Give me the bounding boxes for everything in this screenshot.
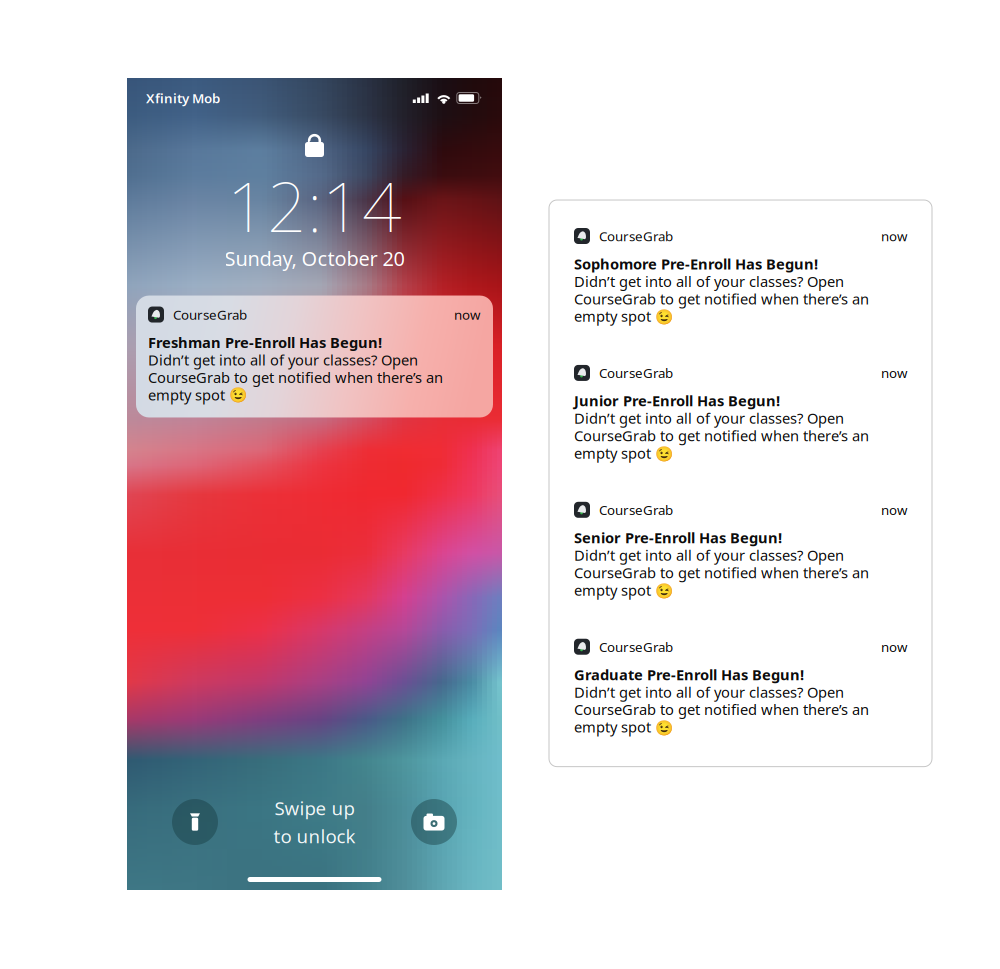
button[interactable]: CourseGrab (574, 365, 907, 463)
staticText: to unlock (273, 823, 355, 848)
staticText: now (881, 364, 907, 382)
staticText: Junior Pre-Enroll Has Begun! (574, 391, 780, 410)
staticText: Graduate Pre-Enroll Has Begun! (574, 665, 804, 684)
staticText: Sunday, October 20 (224, 245, 404, 272)
button[interactable]: CourseGrab (136, 296, 493, 417)
staticText: Didn’t get into all of your classes? Ope… (574, 682, 869, 737)
staticText: Didn’t get into all of your classes? Ope… (574, 408, 869, 463)
staticText: now (881, 227, 907, 245)
staticText: now (454, 306, 480, 323)
staticText: Didn’t get into all of your classes? Ope… (574, 271, 869, 326)
staticText: now (881, 638, 907, 656)
staticText: Didn’t get into all of your classes? Ope… (574, 545, 869, 600)
staticText: Xfinity Mob (146, 89, 220, 107)
staticText: CourseGrab (599, 638, 673, 656)
staticText: Swipe up (274, 796, 354, 820)
staticText: Didn’t get into all of your classes? Ope… (148, 350, 443, 404)
staticText: CourseGrab (599, 501, 673, 519)
staticText: now (881, 501, 907, 519)
staticText: Freshman Pre-Enroll Has Begun! (148, 333, 382, 352)
button[interactable]: Camera (411, 799, 457, 845)
staticText: CourseGrab (173, 306, 247, 323)
button[interactable]: Flashlight (172, 799, 218, 845)
button[interactable]: CourseGrab (574, 228, 907, 326)
button[interactable]: CourseGrab (574, 639, 907, 737)
staticText: CourseGrab (599, 227, 673, 245)
staticText: Sophomore Pre-Enroll Has Begun! (574, 254, 818, 273)
staticText: CourseGrab (599, 364, 673, 382)
staticText: Senior Pre-Enroll Has Begun! (574, 528, 782, 547)
staticText: 12:14 (227, 159, 402, 251)
button[interactable]: CourseGrab (574, 502, 907, 600)
